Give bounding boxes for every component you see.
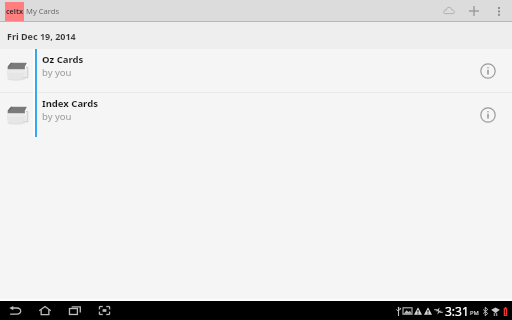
staticText: My Cards: [26, 6, 60, 16]
button[interactable]: Index Cards: [0, 93, 512, 137]
button[interactable]: Screenshot: [95, 301, 114, 320]
button[interactable]: Home: [35, 301, 54, 320]
staticText: by you: [42, 110, 72, 123]
staticText: 3:31: [445, 303, 469, 319]
staticText: PM: [470, 309, 479, 317]
button[interactable]: Add: [463, 0, 485, 22]
button[interactable]: Info: [473, 56, 503, 86]
button[interactable]: Back: [6, 301, 25, 320]
button[interactable]: Cloud sync: [438, 0, 460, 22]
button[interactable]: More options: [488, 0, 510, 22]
staticText: celtx: [6, 7, 23, 17]
button[interactable]: Oz Cards: [0, 49, 512, 93]
button[interactable]: Recent apps: [65, 301, 84, 320]
staticText: Fri Dec 19, 2014: [7, 30, 76, 42]
staticText: Index Cards: [42, 97, 98, 110]
button[interactable]: Info: [473, 100, 503, 130]
staticText: by you: [42, 66, 72, 79]
staticText: Oz Cards: [42, 53, 84, 66]
button[interactable]: celtx: [0, 0, 63, 22]
